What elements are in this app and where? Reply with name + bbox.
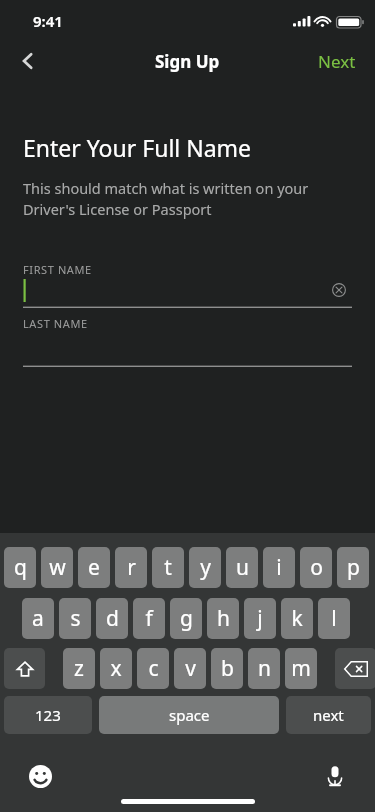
button[interactable]: b	[211, 648, 243, 689]
button[interactable]: g	[170, 598, 202, 639]
staticText: j	[257, 604, 263, 633]
staticText: w	[49, 553, 66, 582]
button[interactable]: i	[263, 547, 295, 588]
button[interactable]: k	[281, 598, 313, 639]
button[interactable]: v	[174, 648, 206, 689]
staticText: space	[169, 705, 210, 725]
staticText: x	[110, 654, 122, 683]
button[interactable]: e	[78, 547, 110, 588]
staticText: k	[291, 604, 303, 633]
staticText: Sign Up	[155, 50, 220, 73]
button[interactable]: Backspace	[335, 648, 375, 689]
staticText: h	[217, 604, 230, 633]
button[interactable]	[23, 331, 352, 367]
button[interactable]: u	[226, 547, 258, 588]
staticText: r	[127, 553, 136, 582]
button[interactable]: x	[100, 648, 132, 689]
button[interactable]: next	[286, 696, 371, 734]
button[interactable]: space	[99, 696, 279, 734]
staticText: LAST NAME	[23, 316, 88, 331]
staticText: a	[32, 604, 44, 633]
staticText: Enter Your Full Name	[23, 132, 252, 163]
staticText: n	[258, 654, 271, 683]
button[interactable]: m	[285, 648, 317, 689]
staticText: v	[185, 654, 196, 683]
staticText: y	[200, 553, 211, 582]
staticText: 9:41	[33, 11, 63, 31]
button[interactable]: l	[318, 598, 350, 639]
button[interactable]: s	[59, 598, 91, 639]
staticText: next	[313, 705, 344, 725]
staticText: b	[221, 654, 234, 683]
staticText: FIRST NAME	[23, 262, 92, 277]
button[interactable]: f	[133, 598, 165, 639]
staticText: t	[164, 553, 172, 582]
button[interactable]: Next	[299, 42, 375, 80]
button[interactable]: Emoji	[20, 756, 60, 796]
button[interactable]: d	[96, 598, 128, 639]
button[interactable]: p	[337, 547, 369, 588]
button[interactable]: y	[189, 547, 221, 588]
staticText: 123	[35, 705, 61, 725]
staticText: f	[145, 604, 153, 633]
staticText: g	[180, 604, 193, 633]
button[interactable]: h	[207, 598, 239, 639]
staticText: i	[276, 553, 282, 582]
staticText: d	[106, 604, 119, 633]
staticText: p	[347, 553, 360, 582]
button[interactable]: Clear first name	[326, 277, 352, 303]
button[interactable]: n	[248, 648, 280, 689]
button[interactable]: w	[41, 547, 73, 588]
button[interactable]: q	[4, 547, 36, 588]
button[interactable]: Voice input	[315, 756, 355, 796]
staticText: o	[310, 553, 323, 582]
staticText: e	[88, 553, 100, 582]
staticText: s	[70, 604, 81, 633]
staticText: q	[14, 553, 27, 582]
button[interactable]: o	[300, 547, 332, 588]
staticText: c	[148, 654, 159, 683]
staticText: u	[236, 553, 249, 582]
button[interactable]: c	[137, 648, 169, 689]
staticText: Next	[318, 50, 356, 72]
staticText: This should match what is written on you…	[23, 178, 352, 220]
button[interactable]: t	[152, 547, 184, 588]
button[interactable]: r	[115, 547, 147, 588]
button[interactable]: j	[244, 598, 276, 639]
staticText: m	[291, 654, 311, 683]
button[interactable]: Shift	[4, 648, 45, 689]
button[interactable]: z	[63, 648, 95, 689]
staticText: z	[74, 654, 84, 683]
button[interactable]: 123	[4, 696, 92, 734]
button[interactable]: Back	[6, 42, 50, 80]
staticText: l	[331, 604, 337, 633]
button[interactable]: a	[22, 598, 54, 639]
